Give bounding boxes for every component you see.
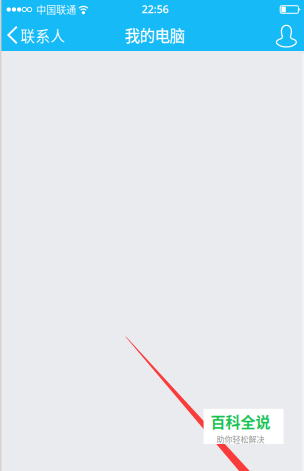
staticText: 百科全说 <box>211 410 271 432</box>
button[interactable]: 联系人 <box>0 19 73 51</box>
button[interactable]: Profile <box>269 19 304 51</box>
staticText: 中国联通 <box>36 2 76 17</box>
staticText: 联系人 <box>20 24 65 46</box>
staticText: 我的电脑 <box>124 24 184 46</box>
staticText: 助你轻松解决 <box>217 433 265 445</box>
staticText: 22:56 <box>141 2 168 16</box>
